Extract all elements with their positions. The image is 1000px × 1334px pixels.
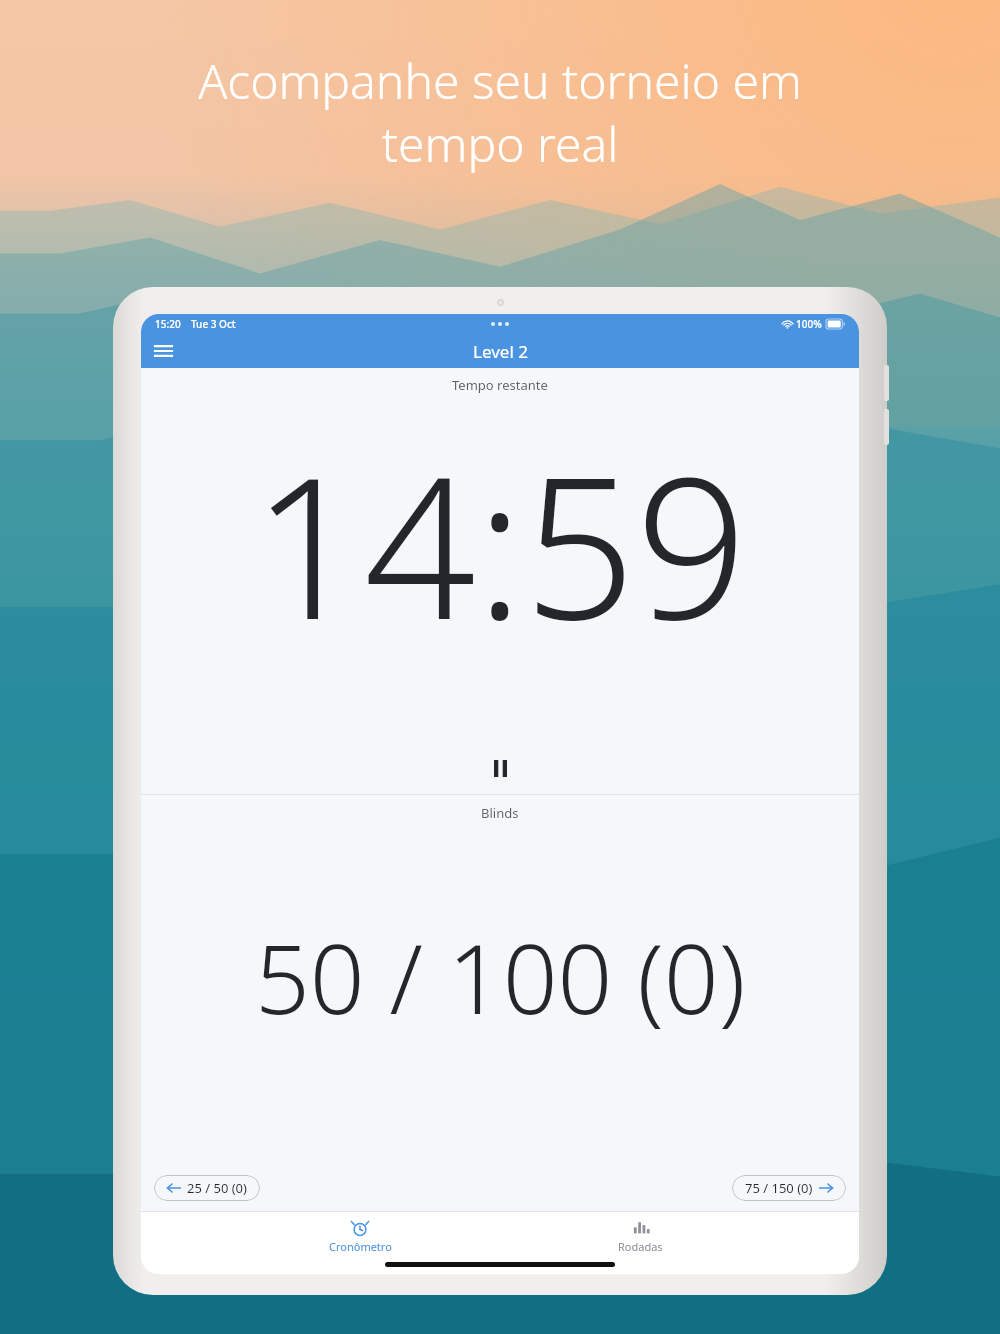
staticText: Acompanhe seu torneio em tempo real xyxy=(198,48,802,177)
button[interactable]: 25 / 50 (0) xyxy=(154,1175,260,1201)
staticText: 75 / 150 (0) xyxy=(745,1179,813,1197)
button[interactable]: Pause xyxy=(141,742,859,794)
staticText: 50 / 100 (0) xyxy=(255,911,746,1042)
button[interactable]: Rodadas xyxy=(580,1216,700,1257)
staticText: Blinds xyxy=(481,804,519,822)
button[interactable]: 75 / 150 (0) xyxy=(732,1175,846,1201)
staticText: 15:20 xyxy=(155,317,181,331)
button[interactable]: Menu xyxy=(148,336,178,366)
staticText: Tempo restante xyxy=(452,376,548,394)
staticText: Rodadas xyxy=(618,1239,663,1254)
staticText: 14:59 xyxy=(252,409,748,676)
staticText: Tue 3 Oct xyxy=(191,317,236,331)
staticText: Level 2 xyxy=(473,340,528,363)
button[interactable]: Cronômetro xyxy=(300,1216,420,1257)
staticText: Cronômetro xyxy=(329,1239,392,1254)
staticText: 25 / 50 (0) xyxy=(187,1179,247,1197)
staticText: 100% xyxy=(796,317,822,331)
